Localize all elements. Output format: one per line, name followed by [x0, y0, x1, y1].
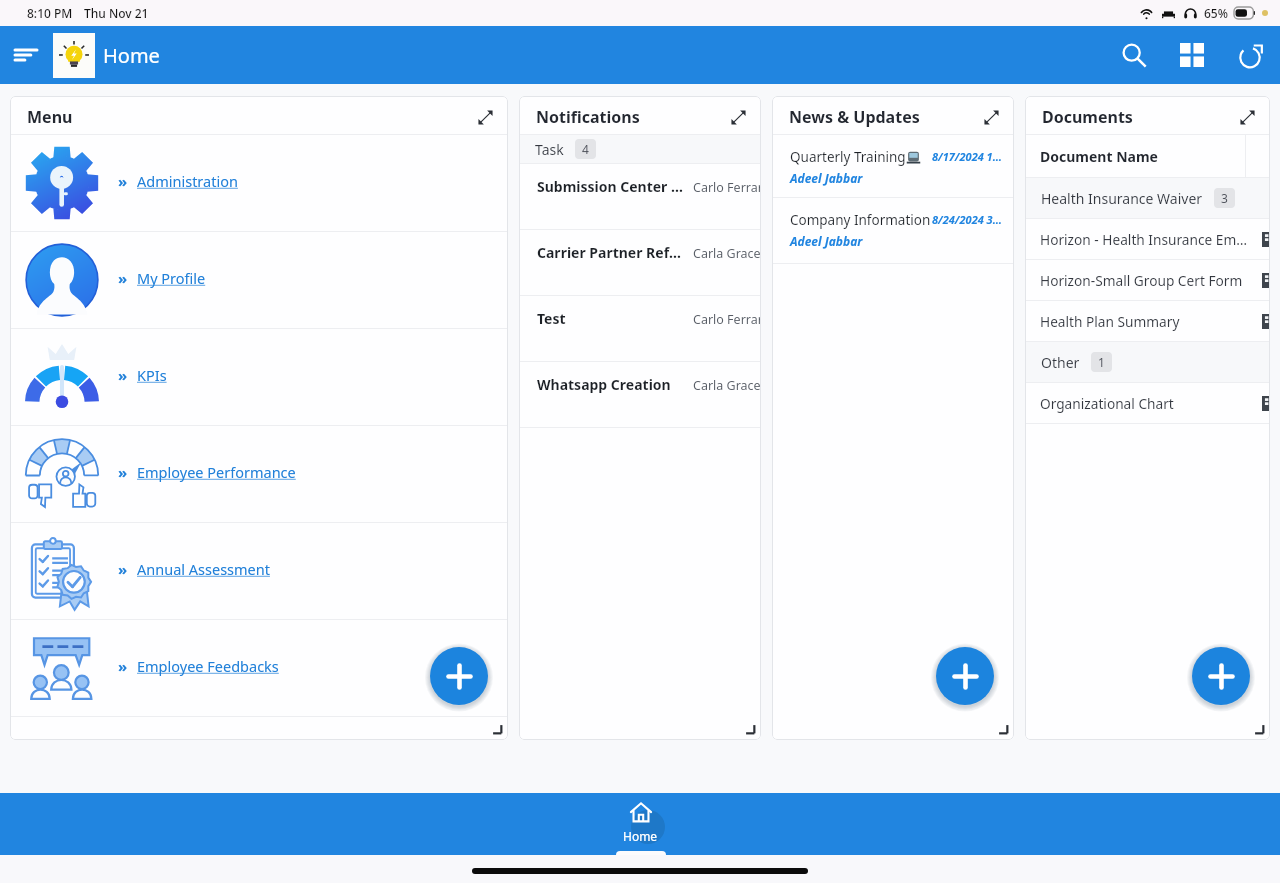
- staticText: Health Plan Summary: [1040, 312, 1180, 331]
- staticText: »: [118, 268, 128, 288]
- button[interactable]: Expand: [977, 103, 1005, 131]
- button[interactable]: Open navigation menu: [15, 40, 45, 70]
- staticText: Adeel Jabbar: [790, 170, 863, 186]
- staticText: Administration: [137, 171, 238, 191]
- staticText: Menu: [27, 106, 73, 128]
- button[interactable]: Whatsapp Creation: [519, 362, 761, 427]
- staticText: 1: [1098, 354, 1105, 370]
- button[interactable]: Quarterly Training: [772, 135, 1014, 197]
- button[interactable]: »: [10, 232, 508, 328]
- staticText: »: [118, 656, 128, 676]
- staticText: Other: [1041, 353, 1080, 372]
- button[interactable]: Add: [430, 647, 488, 705]
- staticText: Carla Grace: [693, 377, 761, 394]
- button[interactable]: Expand: [471, 103, 499, 131]
- staticText: 3: [1221, 190, 1228, 206]
- staticText: Carlo Ferrari: [693, 179, 761, 196]
- staticText: KPIs: [137, 365, 167, 385]
- staticText: 4: [582, 141, 589, 157]
- staticText: Submission Center Cl…: [537, 177, 687, 196]
- button[interactable]: Company Information: [772, 198, 1014, 263]
- staticText: Home: [103, 42, 160, 69]
- button[interactable]: Add: [1192, 647, 1250, 705]
- staticText: »: [118, 559, 128, 579]
- button[interactable]: Search: [1114, 35, 1154, 75]
- staticText: News & Updates: [789, 106, 920, 128]
- staticText: Horizon - Health Insurance Emp…: [1040, 230, 1253, 249]
- button[interactable]: Refresh: [1230, 35, 1270, 75]
- staticText: Notifications: [536, 106, 640, 128]
- staticText: 8/17/2024 1…: [932, 149, 1002, 164]
- button[interactable]: Home: [604, 793, 676, 855]
- staticText: Carla Grace: [693, 245, 761, 262]
- staticText: Horizon-Small Group Cert Form: [1040, 271, 1243, 290]
- button[interactable]: »: [10, 329, 508, 425]
- button[interactable]: Health Plan Summary: [1025, 301, 1270, 341]
- staticText: Whatsapp Creation: [537, 375, 671, 394]
- button[interactable]: »: [10, 426, 508, 522]
- staticText: 8:10 PM: [27, 5, 73, 21]
- button[interactable]: Submission Center Cl…: [519, 164, 761, 229]
- button[interactable]: »: [10, 523, 508, 619]
- button[interactable]: Horizon-Small Group Cert Form: [1025, 260, 1270, 300]
- button[interactable]: Test: [519, 296, 761, 361]
- staticText: Company Information: [790, 211, 931, 229]
- staticText: Document Name: [1040, 147, 1158, 166]
- button[interactable]: Task: [519, 135, 761, 163]
- staticText: Employee Feedbacks: [137, 656, 279, 676]
- staticText: Documents: [1042, 106, 1133, 128]
- staticText: »: [118, 462, 128, 482]
- staticText: Test: [537, 309, 566, 328]
- staticText: Organizational Chart: [1040, 394, 1174, 413]
- staticText: Home: [623, 828, 658, 844]
- button[interactable]: Apps: [1172, 35, 1212, 75]
- button[interactable]: »: [10, 620, 508, 716]
- staticText: Health Insurance Waiver: [1041, 189, 1203, 208]
- staticText: 65%: [1204, 5, 1228, 21]
- button[interactable]: Carrier Partner Refe…: [519, 230, 761, 295]
- button[interactable]: Organizational Chart: [1025, 383, 1270, 423]
- button[interactable]: Expand: [1233, 103, 1261, 131]
- button[interactable]: Other: [1025, 342, 1270, 382]
- button[interactable]: Horizon - Health Insurance Emp…: [1025, 219, 1270, 259]
- staticText: Adeel Jabbar: [790, 233, 863, 249]
- staticText: Carlo Ferrari: [693, 311, 761, 328]
- staticText: My Profile: [137, 268, 206, 288]
- button[interactable]: Expand: [724, 103, 752, 131]
- staticText: Quarterly Training: [790, 148, 906, 166]
- button[interactable]: Add: [936, 647, 994, 705]
- staticText: Carrier Partner Refe…: [537, 243, 687, 262]
- staticText: Annual Assessment: [137, 559, 270, 579]
- staticText: 8/24/2024 3…: [932, 212, 1002, 227]
- staticText: »: [118, 365, 128, 385]
- button[interactable]: Health Insurance Waiver: [1025, 178, 1270, 218]
- staticText: Employee Performance: [137, 462, 296, 482]
- button[interactable]: »: [10, 135, 508, 231]
- staticText: »: [118, 171, 128, 191]
- staticText: Thu Nov 21: [84, 5, 149, 21]
- staticText: Task: [535, 140, 564, 159]
